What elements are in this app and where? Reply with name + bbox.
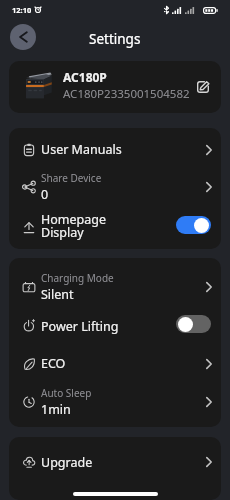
button[interactable]: Upgrade: [9, 444, 221, 480]
button[interactable]: Charging Mode: [9, 265, 221, 308]
staticText: AC180P2335001504582: [63, 86, 190, 102]
button[interactable]: User Manuals: [9, 133, 221, 166]
staticText: 0: [41, 186, 49, 203]
button[interactable]: ECO: [9, 344, 221, 383]
staticText: Auto Sleep: [41, 386, 92, 400]
staticText: Silent: [41, 286, 74, 303]
button[interactable]: Toggle off: [176, 315, 211, 333]
staticText: 12:10: [12, 5, 32, 15]
staticText: Upgrade: [41, 454, 93, 471]
button[interactable]: Toggle on: [176, 216, 211, 234]
staticText: Charging Mode: [41, 271, 114, 285]
staticText: Display: [41, 224, 84, 241]
staticText: User Manuals: [41, 141, 122, 158]
button[interactable]: Power Lifting: [9, 308, 221, 344]
button[interactable]: Back: [10, 24, 36, 50]
button[interactable]: AC180P: [9, 61, 221, 113]
button[interactable]: Auto Sleep: [9, 383, 221, 420]
staticText: ECO: [41, 355, 66, 372]
staticText: AC180P: [63, 69, 107, 85]
button[interactable]: Share Device: [9, 166, 221, 207]
button[interactable]: Homepage: [9, 207, 221, 248]
button[interactable]: Edit name: [190, 74, 216, 100]
staticText: 1min: [41, 401, 71, 418]
staticText: Share Device: [41, 171, 102, 185]
staticText: Homepage: [41, 211, 107, 228]
staticText: Settings: [89, 30, 141, 48]
staticText: Power Lifting: [41, 318, 119, 335]
